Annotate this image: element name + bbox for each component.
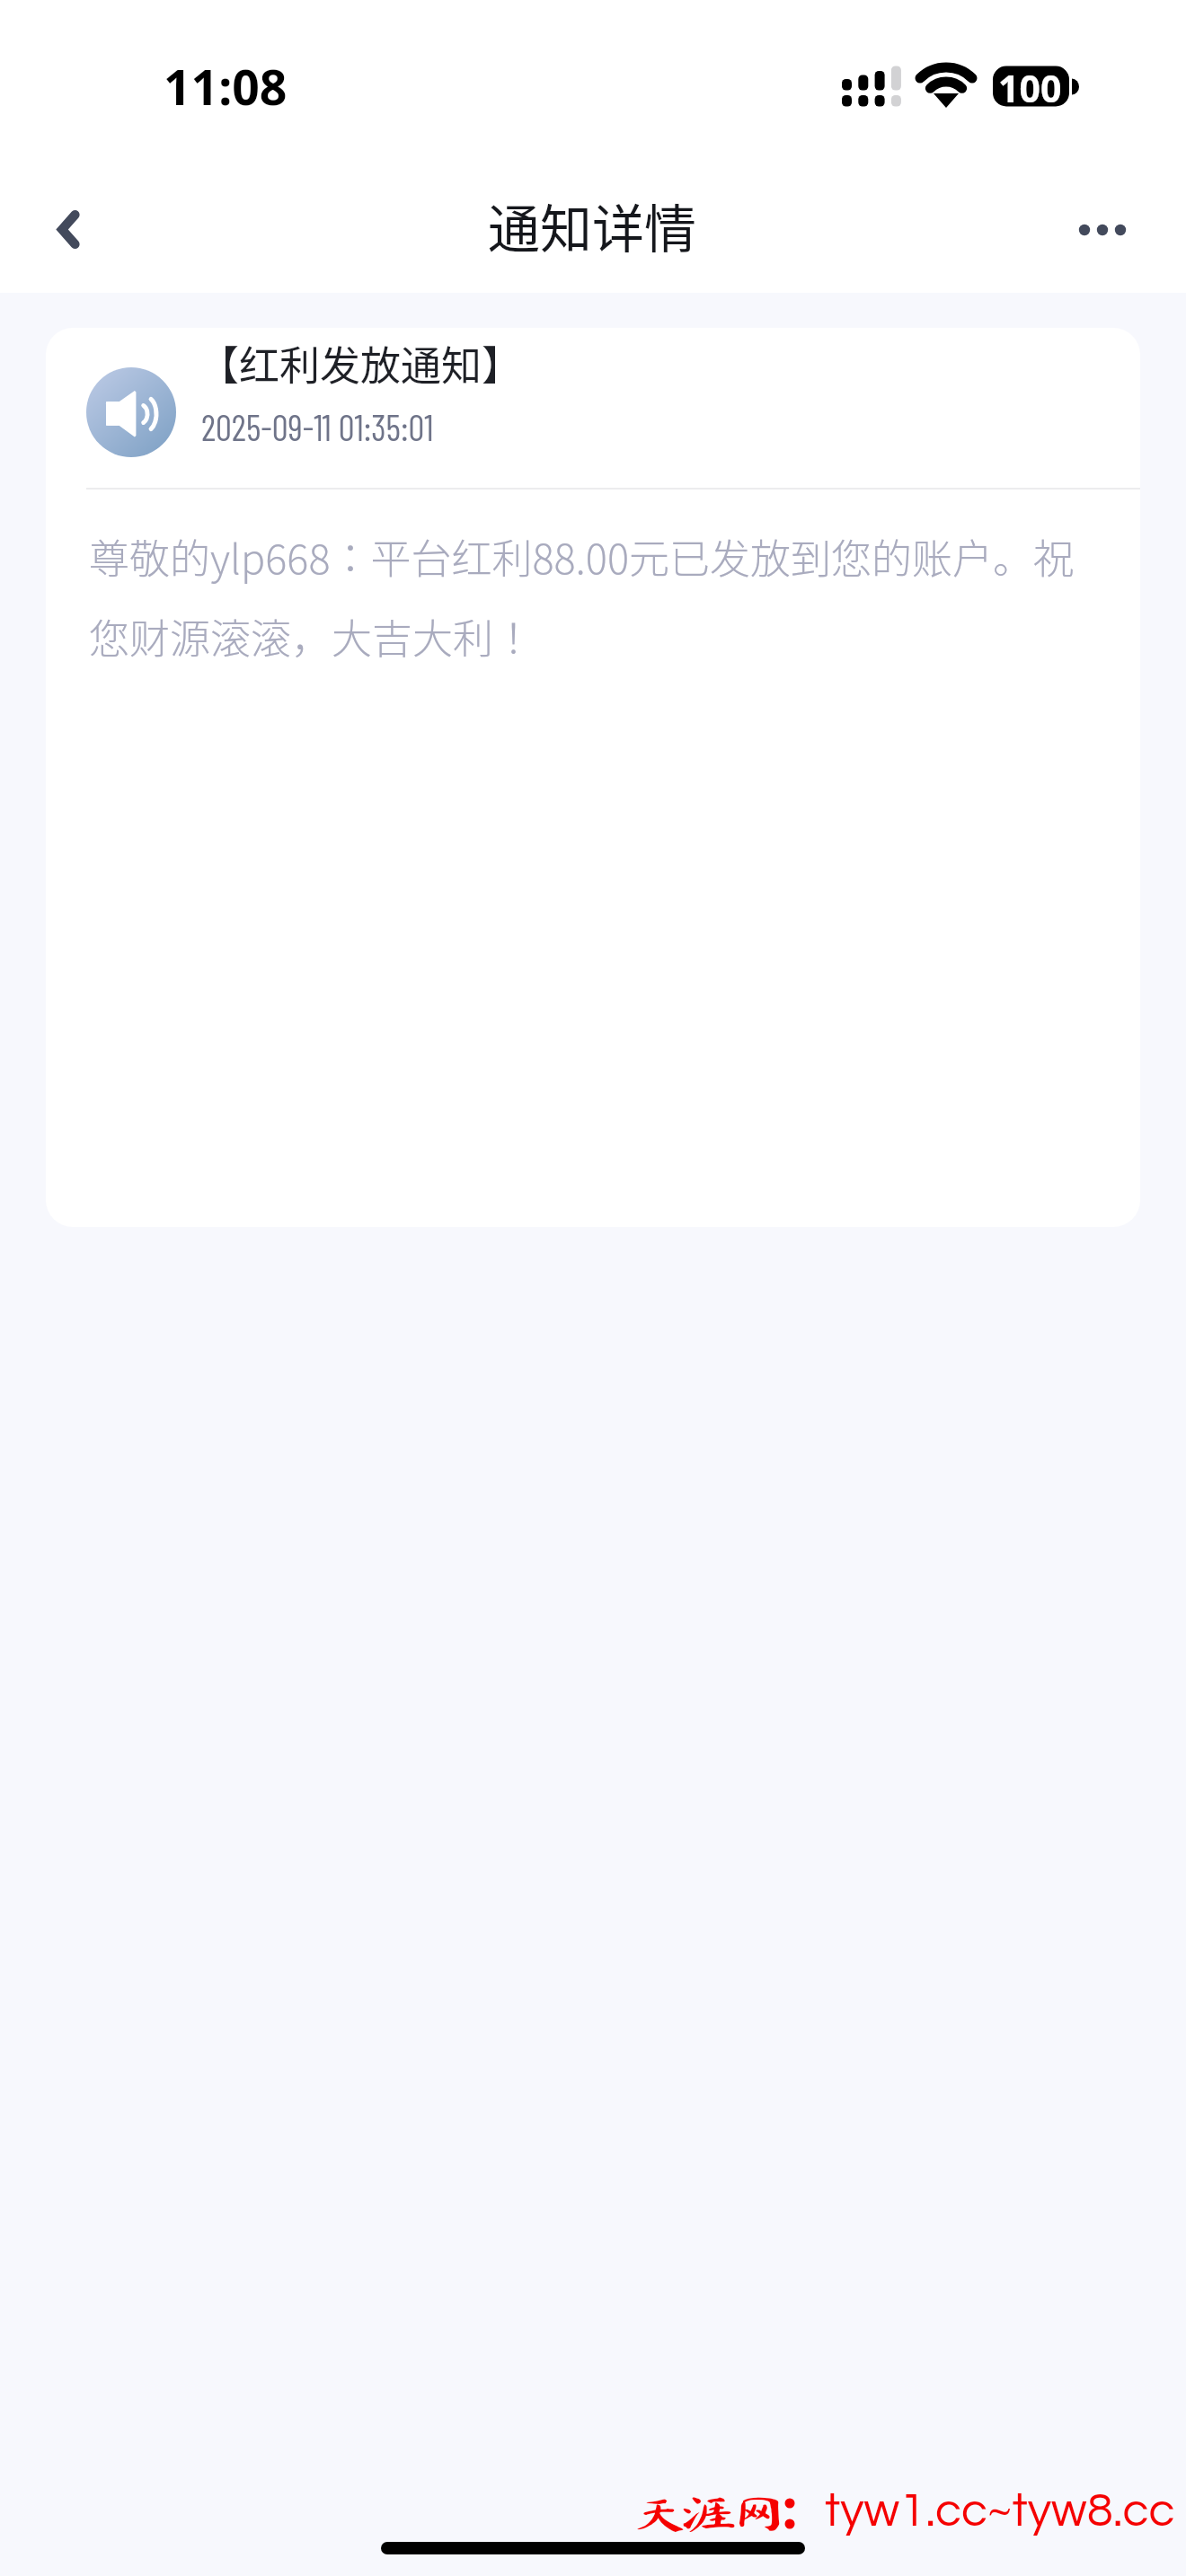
staticText: 【红利发放通知】 (199, 334, 523, 393)
staticText: 网 (730, 2494, 790, 2533)
staticText: 11:08 (164, 54, 288, 119)
button[interactable]: 【红利发放通知】 (46, 328, 1140, 1227)
staticText: 尊敬的ylp668：平台红利88.00元已发放到您的账户。祝您财源滚滚，大吉大利… (89, 527, 1099, 666)
staticText: 涯 (679, 2494, 740, 2533)
button[interactable]: Back (23, 174, 113, 264)
staticText: 通知详情 (488, 188, 697, 263)
staticText: tyw1.cc~tyw8.cc (825, 2487, 1175, 2536)
button[interactable]: More options (1037, 183, 1127, 273)
staticText: 天 (630, 2494, 690, 2533)
staticText: 100 (998, 63, 1062, 103)
staticText: 2025-09-11 01:35:01 (201, 405, 434, 448)
